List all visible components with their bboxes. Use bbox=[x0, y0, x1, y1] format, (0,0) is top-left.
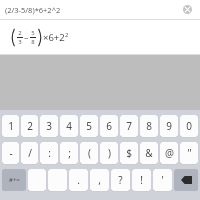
staticText: , bbox=[98, 173, 101, 187]
staticText: @ bbox=[165, 146, 174, 160]
button[interactable]: . bbox=[69, 169, 88, 191]
staticText: - bbox=[9, 146, 13, 160]
staticText: ( bbox=[88, 146, 91, 160]
staticText: . bbox=[77, 173, 80, 187]
button[interactable]: / bbox=[21, 142, 38, 164]
staticText: 8 bbox=[146, 119, 152, 133]
button[interactable]: 6 bbox=[100, 115, 118, 137]
staticText: ? bbox=[118, 173, 123, 187]
staticText: 2 bbox=[18, 29, 22, 37]
staticText: 4 bbox=[66, 119, 72, 133]
staticText: 2 bbox=[65, 31, 69, 39]
staticText: ' bbox=[161, 173, 164, 187]
staticText: 3 bbox=[18, 38, 22, 46]
staticText: 8 bbox=[31, 38, 35, 46]
button[interactable]: 5 bbox=[80, 115, 98, 137]
button[interactable]: #+= bbox=[2, 169, 26, 191]
staticText: ! bbox=[140, 173, 143, 187]
button[interactable]: (2/3-5/8)*6+2^2 bbox=[0, 0, 200, 19]
button[interactable] bbox=[28, 169, 46, 191]
staticText: & bbox=[145, 146, 153, 160]
staticText: 6 bbox=[106, 119, 112, 133]
button[interactable]: ! bbox=[132, 169, 151, 191]
button[interactable]: 8 bbox=[140, 115, 158, 137]
staticText: #+= bbox=[9, 176, 20, 184]
staticText: 1 bbox=[8, 119, 14, 133]
button[interactable]: 0 bbox=[180, 115, 198, 137]
button[interactable] bbox=[48, 169, 67, 191]
button[interactable]: 1 bbox=[2, 115, 19, 137]
staticText: 7 bbox=[126, 119, 132, 133]
button[interactable]: ( bbox=[80, 142, 98, 164]
button[interactable]: @ bbox=[160, 142, 178, 164]
staticText: ) bbox=[108, 146, 111, 160]
button[interactable]: ' bbox=[153, 169, 172, 191]
staticText: 3 bbox=[46, 119, 52, 133]
button[interactable]: Clear text bbox=[181, 3, 194, 16]
button[interactable]: ? bbox=[111, 169, 130, 191]
button[interactable]: 9 bbox=[160, 115, 178, 137]
button[interactable]: , bbox=[90, 169, 109, 191]
staticText: $ bbox=[126, 146, 132, 160]
button[interactable]: : bbox=[40, 142, 58, 164]
staticText: − bbox=[24, 32, 29, 43]
staticText: : bbox=[48, 146, 51, 160]
button[interactable]: Delete bbox=[174, 169, 198, 191]
button[interactable]: 7 bbox=[120, 115, 138, 137]
button[interactable]: ) bbox=[100, 142, 118, 164]
staticText: ×6+2 bbox=[43, 31, 65, 44]
button[interactable]: $ bbox=[120, 142, 138, 164]
button[interactable]: 2 bbox=[21, 115, 38, 137]
button[interactable]: 2 bbox=[0, 20, 200, 54]
button[interactable]: - bbox=[2, 142, 19, 164]
button[interactable]: & bbox=[140, 142, 158, 164]
staticText: 2 bbox=[27, 119, 33, 133]
staticText: 0 bbox=[186, 119, 192, 133]
button[interactable]: 4 bbox=[60, 115, 78, 137]
button[interactable]: 3 bbox=[40, 115, 58, 137]
staticText: 5 bbox=[31, 29, 35, 37]
staticText: ; bbox=[68, 146, 71, 160]
button[interactable]: ; bbox=[60, 142, 78, 164]
staticText: 5 bbox=[86, 119, 92, 133]
staticText: / bbox=[28, 146, 32, 160]
staticText: (2/3-5/8)*6+2^2 bbox=[5, 5, 61, 15]
button[interactable]: " bbox=[180, 142, 198, 164]
staticText: " bbox=[187, 146, 192, 160]
staticText: 9 bbox=[166, 119, 172, 133]
